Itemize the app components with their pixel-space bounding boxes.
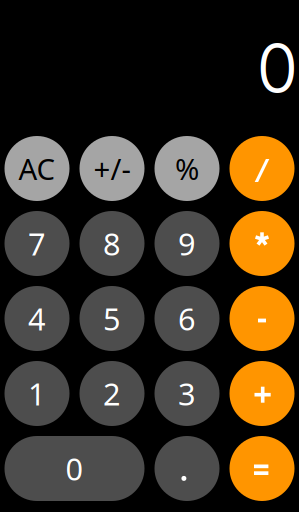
button[interactable]: Multiply xyxy=(229,211,294,276)
staticText: 5 xyxy=(103,298,121,339)
button[interactable]: Add xyxy=(229,361,294,426)
staticText: 1 xyxy=(28,373,46,414)
button[interactable]: 7 xyxy=(4,211,69,276)
button[interactable]: 6 xyxy=(154,286,219,351)
button[interactable]: Equals xyxy=(229,436,294,501)
button[interactable]: Toggle sign xyxy=(79,136,144,201)
button[interactable]: 2 xyxy=(79,361,144,426)
button[interactable]: 0 xyxy=(4,436,144,501)
button[interactable]: 5 xyxy=(79,286,144,351)
staticText: 4 xyxy=(28,298,46,339)
button[interactable]: 3 xyxy=(154,361,219,426)
staticText: 6 xyxy=(178,298,196,339)
button[interactable]: 8 xyxy=(79,211,144,276)
staticText: 0 xyxy=(258,28,297,109)
button[interactable]: 9 xyxy=(154,211,219,276)
button[interactable]: 1 xyxy=(4,361,69,426)
button[interactable]: Divide xyxy=(229,136,294,201)
button[interactable]: 4 xyxy=(4,286,69,351)
staticText: % xyxy=(175,149,199,188)
staticText: +/- xyxy=(93,149,130,188)
staticText: 9 xyxy=(178,223,196,264)
staticText: 2 xyxy=(103,373,121,414)
button[interactable]: Decimal point xyxy=(154,436,219,501)
button[interactable]: Percent xyxy=(154,136,219,201)
staticText: 8 xyxy=(103,223,121,264)
button[interactable]: All clear xyxy=(4,136,69,201)
button[interactable]: Subtract xyxy=(229,286,294,351)
staticText: AC xyxy=(18,149,55,188)
staticText: 0 xyxy=(65,448,83,489)
staticText: 3 xyxy=(178,373,196,414)
staticText: 7 xyxy=(28,223,46,264)
